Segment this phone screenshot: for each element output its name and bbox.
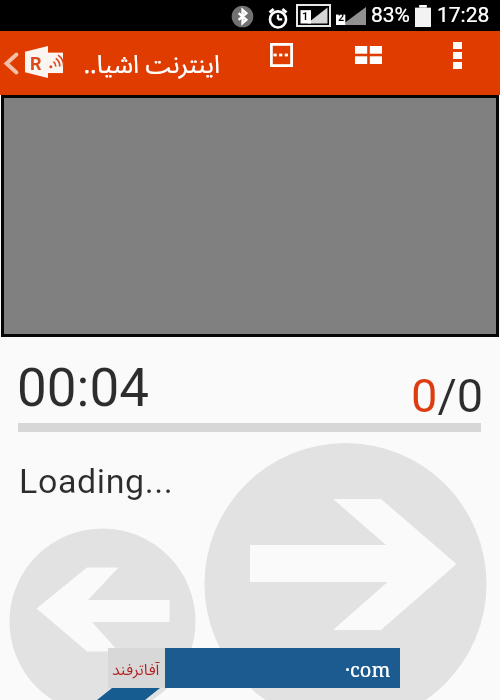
staticText: اينترنت اشيا.. xyxy=(83,46,220,80)
button[interactable]: Crop xyxy=(257,31,305,79)
staticText: آفاترفند xyxy=(112,658,160,680)
staticText: 0/0 xyxy=(411,368,484,423)
staticText: 83% xyxy=(371,3,410,28)
staticText: 17:28 xyxy=(437,3,490,28)
staticText: R xyxy=(30,53,42,74)
staticText: 1 xyxy=(302,10,309,23)
staticText: Loading... xyxy=(19,461,174,501)
staticText: ·com xyxy=(345,656,391,683)
staticText: 2 xyxy=(338,11,345,24)
button[interactable]: More options xyxy=(433,31,481,79)
staticText: 00:04 xyxy=(17,357,149,419)
button[interactable]: Grid view xyxy=(344,31,392,79)
button[interactable]: Back xyxy=(0,39,68,87)
